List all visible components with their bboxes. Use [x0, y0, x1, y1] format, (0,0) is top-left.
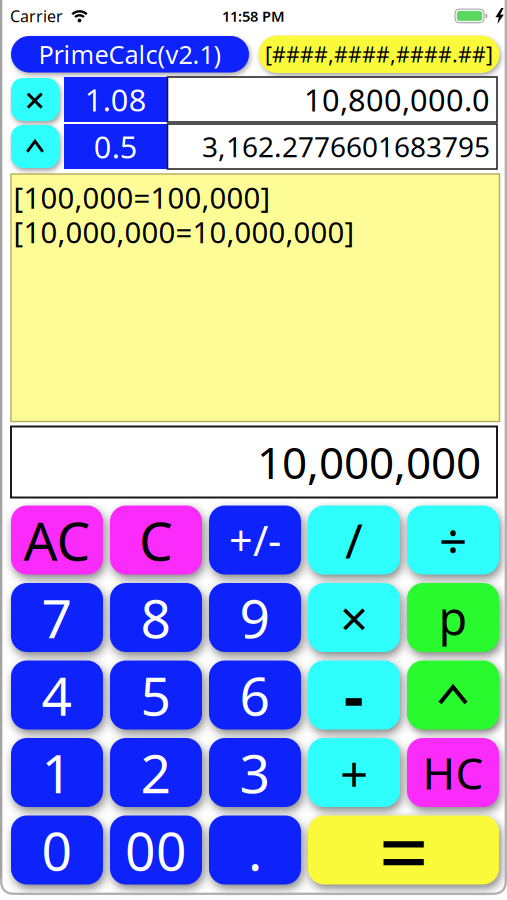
button[interactable]: 3	[209, 738, 301, 807]
button[interactable]: =	[308, 815, 499, 884]
staticText: 4	[41, 660, 72, 730]
staticText: p	[438, 586, 467, 648]
button[interactable]: /	[308, 505, 400, 574]
button[interactable]: -	[308, 660, 400, 729]
button[interactable]: 8	[110, 583, 202, 652]
staticText: 9	[239, 582, 270, 653]
button[interactable]: p	[407, 583, 499, 652]
staticText: [10,000,000=10,000,000]	[13, 212, 354, 251]
button[interactable]: 7	[11, 583, 103, 652]
staticText: ×	[340, 585, 368, 650]
button[interactable]: ×	[308, 583, 400, 652]
button[interactable]: 00	[110, 815, 202, 884]
button[interactable]: Multiply operator	[11, 78, 59, 121]
staticText: C	[139, 505, 173, 575]
staticText: ×	[24, 76, 45, 123]
staticText: 7	[41, 582, 72, 653]
staticText: AC	[23, 505, 90, 575]
button[interactable]: Power	[407, 660, 499, 729]
button[interactable]: 5	[110, 660, 202, 729]
staticText: 6	[239, 660, 270, 730]
staticText: 8	[140, 582, 171, 653]
staticText: ÷	[439, 507, 467, 573]
staticText: /	[345, 508, 363, 572]
staticText: =	[378, 792, 428, 900]
button[interactable]: Power operator	[11, 125, 59, 168]
staticText: Carrier	[10, 5, 63, 27]
staticText: 00	[125, 815, 187, 885]
staticText: 3,162.2776601683795	[202, 128, 490, 165]
button[interactable]: C	[110, 505, 202, 574]
staticText: .	[248, 815, 262, 885]
button[interactable]: HC	[407, 738, 499, 807]
staticText: PrimeCalc(v2.1)	[38, 37, 221, 71]
staticText: +	[340, 740, 368, 805]
button[interactable]: 1	[11, 738, 103, 807]
button[interactable]: +	[308, 738, 400, 807]
staticText: 0.5	[94, 126, 138, 167]
staticText: 2	[140, 737, 171, 808]
staticText: 0	[41, 815, 72, 885]
button[interactable]: 6	[209, 660, 301, 729]
button[interactable]: 2	[110, 738, 202, 807]
staticText: 10,000,000	[257, 433, 481, 491]
button[interactable]: 4	[11, 660, 103, 729]
button[interactable]: [####,####,####.##]	[258, 35, 499, 73]
button[interactable]: 9	[209, 583, 301, 652]
staticText: +/-	[229, 513, 281, 567]
staticText: 5	[140, 660, 171, 730]
button[interactable]: 0	[11, 815, 103, 884]
staticText: 1	[41, 737, 72, 808]
button[interactable]: PrimeCalc(v2.1)	[11, 36, 249, 72]
staticText: 1.08	[85, 79, 147, 120]
button[interactable]: AC	[11, 505, 103, 574]
staticText: HC	[422, 743, 483, 802]
button[interactable]: ÷	[407, 505, 499, 574]
staticText: [####,####,####.##]	[265, 40, 493, 68]
staticText: 3	[239, 737, 270, 808]
staticText: 10,800,000.0	[304, 79, 490, 120]
staticText: 11:58 PM	[222, 6, 285, 26]
staticText: -	[344, 654, 364, 736]
button[interactable]: +/-	[209, 505, 301, 574]
button[interactable]: .	[209, 815, 301, 884]
staticText: [100,000=100,000]	[13, 178, 270, 217]
